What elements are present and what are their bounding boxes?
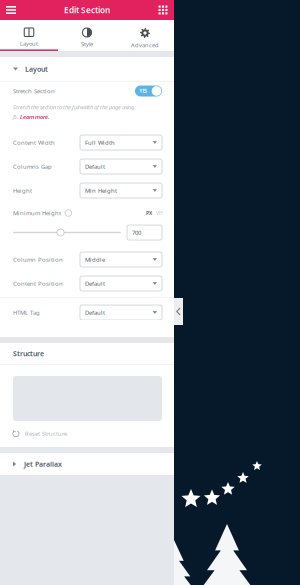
- staticText: Min Height: [85, 186, 117, 194]
- staticText: Stretch Section: [13, 87, 55, 95]
- button[interactable]: Full Width: [80, 135, 162, 150]
- staticText: Minimum Height: [13, 209, 61, 217]
- staticText: Column Position: [13, 255, 63, 263]
- button[interactable]: Jet Parallax: [0, 453, 174, 475]
- staticText: Layout: [20, 39, 38, 47]
- staticText: Middle: [85, 255, 105, 263]
- staticText: 700: [132, 228, 141, 236]
- button[interactable]: Default: [80, 159, 162, 174]
- button[interactable]: Menu: [0, 0, 22, 20]
- button[interactable]: Min Height: [80, 183, 162, 198]
- staticText: Structure: [13, 349, 44, 358]
- button[interactable]: Default: [80, 305, 162, 320]
- staticText: Learn more.: [20, 113, 50, 120]
- staticText: HTML Tag: [13, 308, 40, 316]
- staticText: PX: [146, 209, 152, 216]
- button[interactable]: Advanced: [116, 20, 174, 51]
- staticText: Full Width: [85, 138, 115, 146]
- staticText: Columns Gap: [13, 162, 52, 170]
- staticText: Default: [85, 162, 105, 170]
- staticText: Stretch the section to the full width of…: [13, 103, 134, 111]
- staticText: Height: [13, 186, 32, 194]
- staticText: Layout: [25, 64, 48, 74]
- button[interactable]: Widgets panel: [152, 0, 174, 20]
- staticText: Edit Section: [64, 4, 110, 16]
- button[interactable]: VH: [156, 209, 163, 216]
- staticText: Style: [81, 40, 93, 48]
- staticText: Content Width: [13, 138, 55, 146]
- staticText: Reset Structure: [25, 429, 67, 437]
- button[interactable]: Learn more.: [20, 113, 50, 120]
- button[interactable]: Layout: [0, 57, 174, 81]
- button[interactable]: Default: [80, 276, 162, 291]
- staticText: VH: [156, 209, 163, 216]
- staticText: Default: [85, 279, 105, 287]
- staticText: Advanced: [131, 41, 159, 49]
- button[interactable]: PX: [146, 209, 152, 216]
- button[interactable]: Reset Structure: [0, 425, 174, 442]
- button[interactable]: Middle: [80, 252, 162, 267]
- button[interactable]: Layout: [0, 20, 58, 51]
- staticText: Default: [85, 308, 105, 316]
- button[interactable]: Collapse panel: [174, 298, 183, 325]
- button[interactable]: Style: [58, 20, 116, 51]
- staticText: JS.: [13, 113, 18, 120]
- staticText: Jet Parallax: [24, 459, 62, 469]
- staticText: YES: [139, 88, 146, 94]
- staticText: Content Position: [13, 279, 63, 287]
- button[interactable]: Stretch Section: [135, 85, 162, 96]
